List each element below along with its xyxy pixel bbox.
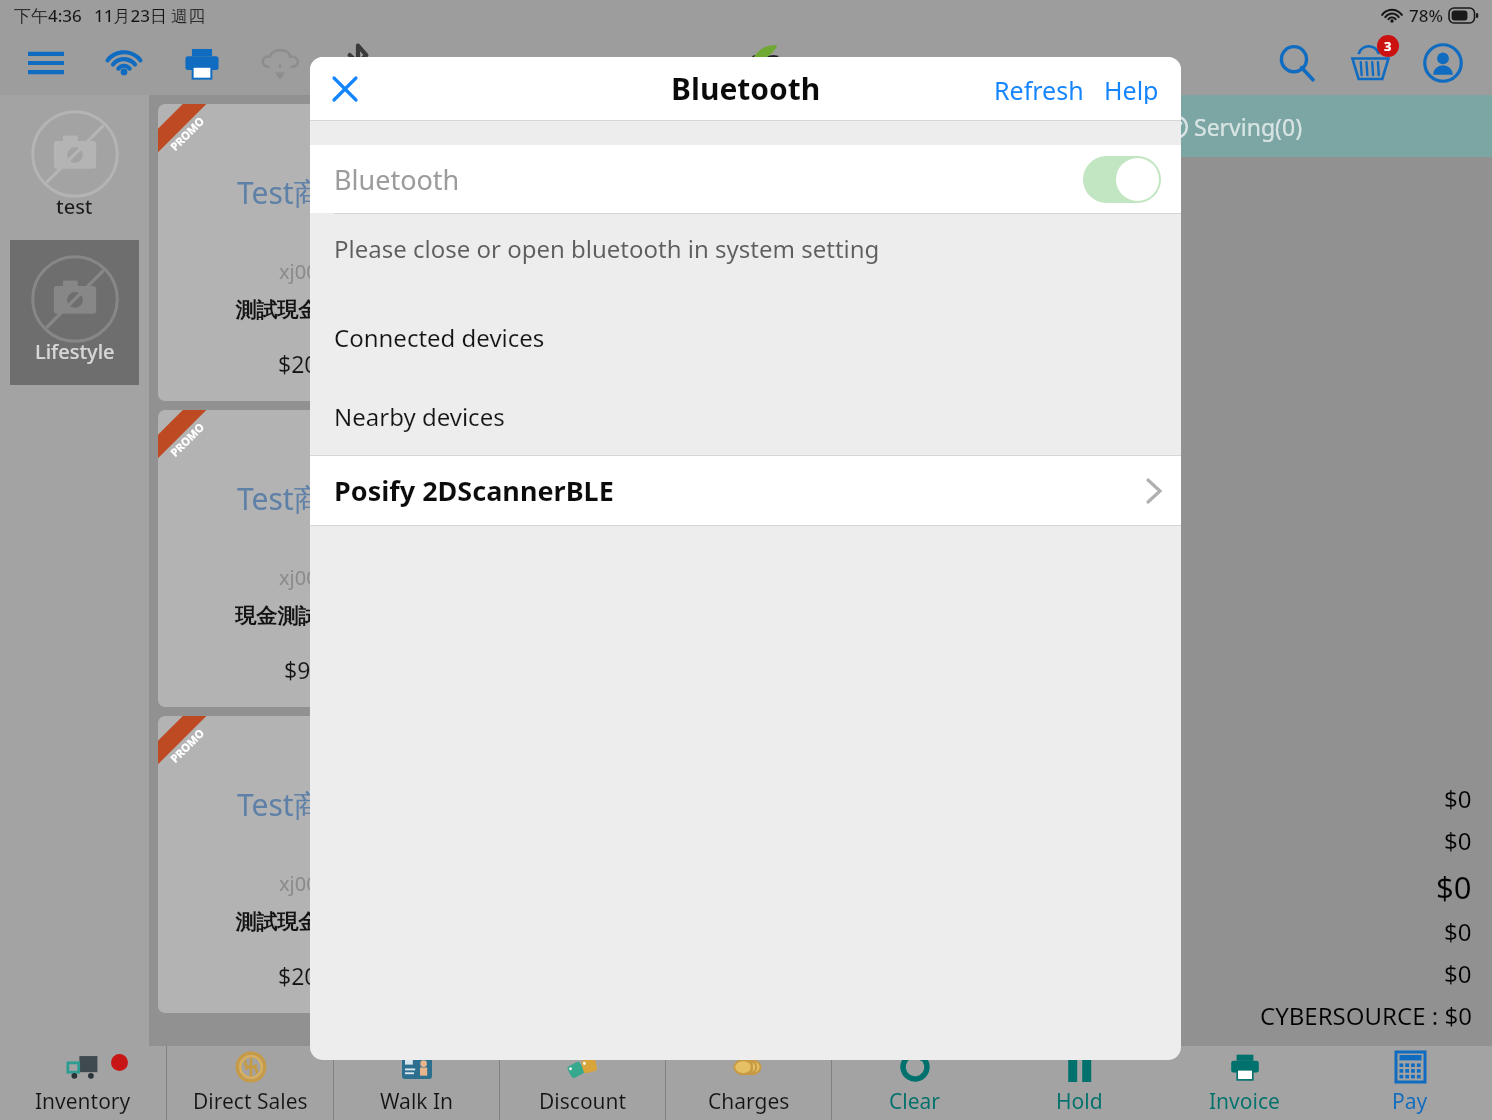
staticText: ® [802,78,813,96]
button[interactable]: Lifestyle [10,240,139,385]
staticText: Help [1104,73,1159,104]
staticText: PROMO [167,725,207,766]
staticText: Pay [1392,1087,1428,1116]
button[interactable]: Cart, 3 items [1340,33,1400,93]
staticText: Test商品0 [237,478,371,519]
staticText: $0 [1444,824,1472,857]
staticText: Serving(0) [1194,111,1303,142]
button[interactable]: Search [1268,34,1326,92]
staticText: Invoice [1209,1087,1280,1116]
button[interactable]: Serving(0) [975,95,1492,157]
button[interactable]: Refresh [984,57,1094,120]
staticText: xj001 [279,564,330,591]
staticText: Connected devices [334,321,545,354]
staticText: Clear [889,1087,940,1116]
button[interactable]: Bluetooth [310,145,1181,213]
button[interactable]: Posify 2DScannerBLE [310,456,1181,525]
staticText: Cart(0) [681,111,754,142]
staticText: Posify 2DScannerBLE [334,472,614,509]
button[interactable]: Close [316,60,374,118]
staticText: Refresh [994,73,1084,104]
staticText: Hold [1056,1087,1103,1116]
button[interactable]: Pay [1327,1046,1492,1120]
button[interactable]: Test商品0 [158,104,450,401]
button[interactable]: Menu [18,35,74,91]
staticText: 下午4:36 [14,4,82,27]
staticText: Test商品0 [237,172,371,213]
button[interactable]: Hold [997,1046,1162,1120]
button[interactable]: Bluetooth [330,35,386,91]
staticText: Direct Sales [193,1087,308,1116]
staticText: $0 [1444,782,1472,815]
button[interactable]: Test商品0 [158,716,450,1013]
staticText: Please close or open bluetooth in system… [334,232,880,265]
staticText: PROMO [167,419,207,460]
staticText: 11月23日 週四 [94,4,206,27]
staticText: PROMO [167,113,207,154]
button[interactable]: Clear [832,1046,997,1120]
button[interactable]: Wi-Fi [96,35,152,91]
button[interactable]: Inventory [0,1046,166,1120]
button[interactable]: Charges [666,1046,831,1120]
button[interactable]: Discount [500,1046,665,1120]
button[interactable]: Help [1094,57,1181,120]
staticText: 3 [1384,37,1392,55]
button[interactable]: Print [174,35,230,91]
staticText: test [56,193,93,220]
button[interactable]: Test商品0 [158,410,450,707]
button[interactable]: Walk In [334,1046,499,1120]
staticText: $95 [284,654,324,685]
staticText: Bluetooth [334,161,460,198]
button[interactable]: Cart(0) [459,95,975,157]
staticText: 測試現金套券0 [235,907,374,936]
button[interactable]: Account [1414,34,1472,92]
button[interactable]: Direct Sales [167,1046,333,1120]
staticText: Lifestyle [35,338,115,365]
staticText: $200 [278,348,331,379]
staticText: 現金測試套券0 [235,601,374,630]
staticText: 測試現金套券0 [235,295,374,324]
button[interactable]: Sync [252,35,308,91]
staticText: Charges [708,1087,790,1116]
staticText: CYBERSOURCE : $0 [1260,999,1472,1032]
button[interactable]: Invoice [1162,1046,1327,1120]
button[interactable]: test [10,95,139,240]
staticText: Discount [539,1087,627,1116]
staticText: xj006 [279,258,330,285]
staticText: Bluetooth [671,68,821,109]
staticText: $0 [1444,915,1472,948]
staticText: Walk In [380,1087,454,1116]
staticText: $0 [1444,957,1472,990]
staticText: xj002 [279,870,330,897]
staticText: $0 [1436,866,1472,908]
staticText: $200 [278,960,331,991]
staticText: 78% [1409,4,1443,27]
staticText: Nearby devices [334,400,505,433]
staticText: Inventory [35,1087,131,1116]
staticText: Test商品0 [237,784,371,825]
staticText: posify [679,42,800,96]
